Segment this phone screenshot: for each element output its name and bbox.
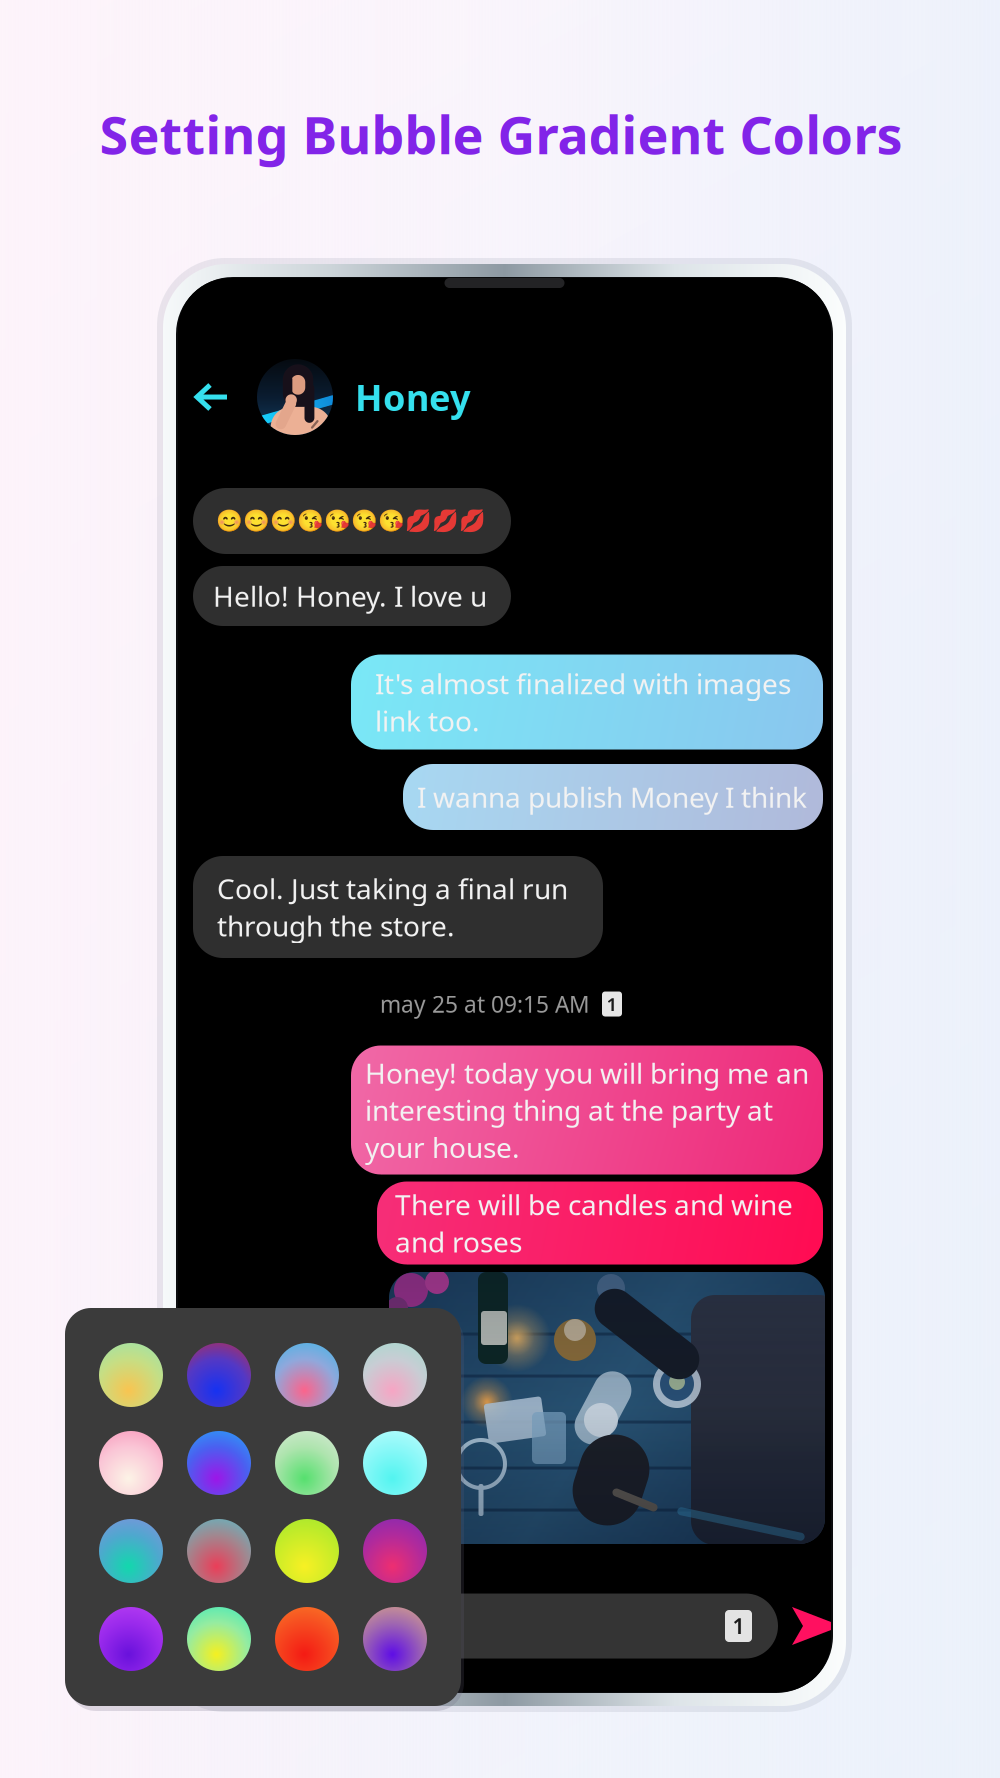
button[interactable]: Gradient colour 8 xyxy=(363,1431,427,1495)
button[interactable]: Gradient colour 13 xyxy=(99,1607,163,1671)
button[interactable]: Gradient colour 16 xyxy=(363,1607,427,1671)
staticText: There will be candles and wine and roses xyxy=(395,1186,793,1260)
button[interactable]: Gradient colour 12 xyxy=(363,1519,427,1583)
staticText: 😊😊😊😘😘😘😘💋💋💋 xyxy=(216,509,486,533)
staticText: 1 xyxy=(606,992,617,1016)
staticText: It's almost finalized with images link t… xyxy=(375,665,791,739)
button[interactable]: Gradient colour 14 xyxy=(187,1607,251,1671)
button[interactable]: Gradient colour 1 xyxy=(99,1343,163,1407)
button[interactable]: Gradient colour 9 xyxy=(99,1519,163,1583)
button[interactable]: Send xyxy=(784,1594,844,1658)
staticText: may 25 at 09:15 AM xyxy=(380,989,590,1019)
button[interactable]: Gradient colour 15 xyxy=(275,1607,339,1671)
staticText: Hello! Honey. I love u xyxy=(213,577,487,615)
button[interactable]: Gradient colour 11 xyxy=(275,1519,339,1583)
button[interactable]: Gradient colour 2 xyxy=(187,1343,251,1407)
button[interactable]: Gradient colour 6 xyxy=(187,1431,251,1495)
staticText: I wanna publish Money I think xyxy=(417,778,807,816)
button[interactable]: Gradient colour 10 xyxy=(187,1519,251,1583)
button[interactable]: Type a message xyxy=(191,1593,778,1658)
button[interactable]: Gradient colour 7 xyxy=(275,1431,339,1495)
staticText: 1 xyxy=(732,1612,744,1640)
button[interactable]: Honey xyxy=(257,359,471,435)
button[interactable]: Gradient colour 5 xyxy=(99,1431,163,1495)
staticText: Cool. Just taking a final run through th… xyxy=(217,870,568,944)
button[interactable]: Back xyxy=(187,375,237,419)
staticText: Type a message xyxy=(221,1606,442,1645)
button[interactable]: Gradient colour 4 xyxy=(363,1343,427,1407)
staticText: Honey! today you will bring me an intere… xyxy=(365,1054,809,1166)
staticText: Honey xyxy=(355,373,471,421)
button[interactable]: Gradient colour 3 xyxy=(275,1343,339,1407)
staticText: Setting Bubble Gradient Colors xyxy=(99,99,902,169)
